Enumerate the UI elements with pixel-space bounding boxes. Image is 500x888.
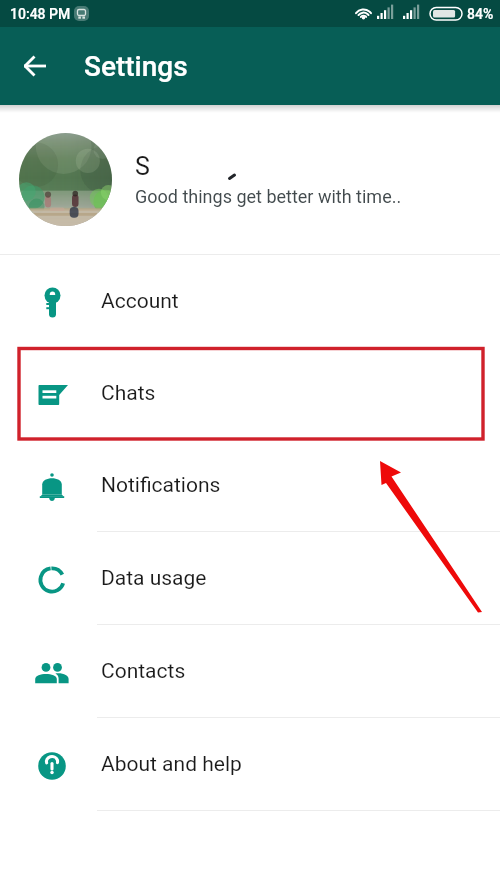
- button[interactable]: Data usage: [0, 532, 500, 624]
- button[interactable]: Contacts: [0, 625, 500, 717]
- button[interactable]: About and help: [0, 718, 500, 810]
- button[interactable]: Chats: [0, 347, 500, 439]
- button[interactable]: Back: [14, 45, 56, 87]
- staticText: S: [135, 152, 150, 181]
- button[interactable]: Notifications: [0, 439, 500, 531]
- button[interactable]: S: [0, 105, 500, 254]
- staticText: 84%: [467, 6, 494, 22]
- staticText: Good things get better with time..: [135, 186, 402, 207]
- staticText: About and help: [101, 752, 242, 777]
- staticText: Account: [101, 289, 179, 314]
- staticText: 10:48 PM: [10, 6, 71, 22]
- staticText: Chats: [101, 381, 156, 406]
- staticText: Data usage: [101, 566, 207, 591]
- staticText: Notifications: [101, 473, 221, 498]
- staticText: Contacts: [101, 659, 186, 684]
- button[interactable]: Account: [0, 255, 500, 347]
- staticText: Settings: [84, 50, 188, 83]
